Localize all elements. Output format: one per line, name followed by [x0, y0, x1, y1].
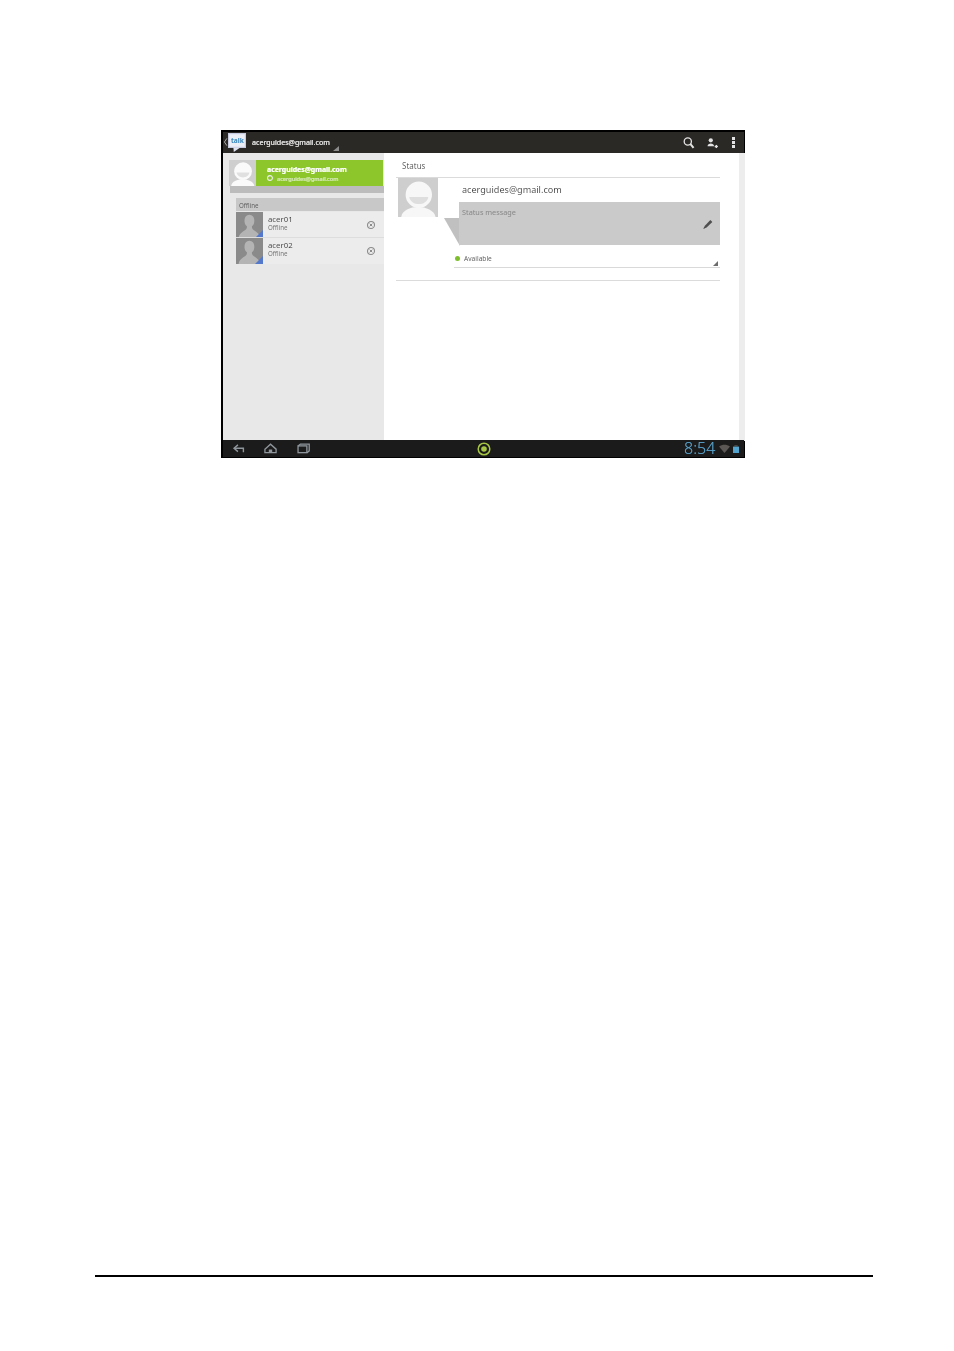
staticText: acer01: [268, 214, 293, 225]
button[interactable]: acerguides@gmail.com: [252, 137, 330, 147]
staticText: 8:54: [684, 437, 716, 459]
button[interactable]: More options: [723, 132, 743, 153]
button[interactable]: Search: [677, 132, 701, 153]
button[interactable]: Available: [454, 253, 720, 268]
staticText: Available: [464, 254, 492, 263]
button[interactable]: Recent apps: [296, 440, 311, 457]
staticText: Offline: [268, 249, 288, 257]
button[interactable]: Status message: [459, 202, 720, 245]
button[interactable]: acer01: [236, 212, 384, 238]
staticText: acerguides@gmail.com: [462, 183, 562, 195]
staticText: acer02: [268, 240, 293, 251]
staticText: talk: [231, 136, 244, 145]
staticText: Status message: [462, 207, 516, 217]
staticText: Offline: [239, 201, 259, 209]
button[interactable]: acerguides@gmail.com: [229, 160, 383, 186]
button[interactable]: Screenshot: [477, 440, 491, 457]
button[interactable]: Back: [232, 440, 246, 457]
other: Edit status message: [700, 217, 714, 231]
button[interactable]: acer02: [236, 238, 384, 264]
staticText: Offline: [268, 223, 288, 231]
staticText: acerguides@gmail.com: [267, 165, 347, 174]
button[interactable]: Add friend: [700, 132, 724, 153]
button[interactable]: Remove acer02: [363, 238, 379, 264]
button[interactable]: Google Talk: [228, 133, 246, 152]
staticText: Status: [402, 160, 426, 171]
button[interactable]: Home: [263, 440, 278, 457]
button[interactable]: Remove acer01: [363, 212, 379, 238]
staticText: acerguides@gmail.com: [277, 175, 339, 183]
